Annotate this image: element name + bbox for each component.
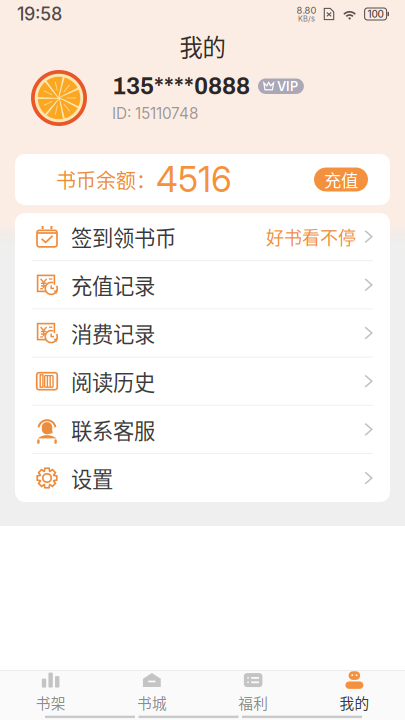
staticText: 阅读历史 [71, 366, 155, 397]
staticText: 100 [368, 8, 384, 20]
staticText: 设置 [71, 463, 113, 493]
button[interactable]: 签到领书币 [15, 213, 390, 261]
button[interactable]: 联系客服 [15, 406, 390, 454]
button[interactable]: 阅读历史 [15, 358, 390, 406]
staticText: 书币余额： [56, 165, 156, 194]
button[interactable]: 设置 [15, 454, 390, 502]
button[interactable]: 充值 [314, 167, 368, 191]
staticText: 好书看不停 [266, 224, 356, 250]
staticText: KB/s [298, 14, 315, 23]
staticText: 4516 [156, 158, 232, 200]
staticText: 135****0888 [112, 73, 250, 99]
staticText: VIP [277, 78, 298, 94]
staticText: ID: 15110748 [112, 104, 198, 123]
button[interactable]: 充值记录 [15, 261, 390, 309]
staticText: 充值记录 [71, 269, 155, 300]
staticText: 充值 [324, 167, 358, 192]
staticText: 联系客服 [71, 414, 155, 445]
staticText: 消费记录 [71, 318, 155, 348]
staticText: 福利 [238, 692, 268, 713]
button[interactable]: 书架 [0, 671, 101, 714]
staticText: 8.80 [297, 5, 317, 16]
staticText: 19:58 [17, 3, 62, 25]
staticText: 我的 [339, 692, 369, 713]
button[interactable]: VIP [258, 78, 304, 94]
button[interactable]: 消费记录 [15, 309, 390, 358]
staticText: 书架 [36, 692, 66, 713]
button[interactable]: 福利 [202, 671, 304, 714]
button[interactable]: 书城 [101, 671, 202, 714]
staticText: 书城 [137, 692, 167, 713]
button[interactable]: 我的 [304, 671, 405, 714]
staticText: 我的 [179, 29, 225, 63]
staticText: 签到领书币 [71, 221, 176, 252]
